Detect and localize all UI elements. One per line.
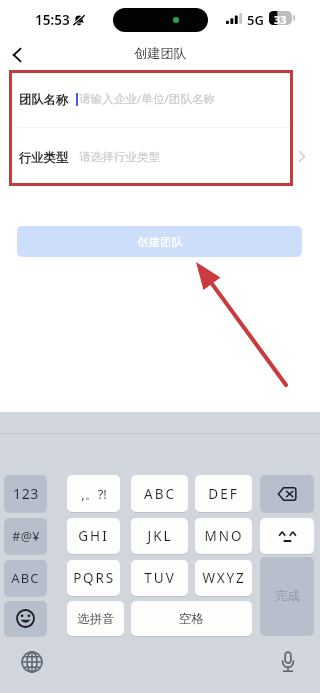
button[interactable]: DEF: [195, 475, 252, 512]
button[interactable]: Switch keyboard language: [20, 650, 44, 674]
button[interactable]: ABC: [4, 560, 47, 596]
button[interactable]: 完成: [260, 557, 314, 635]
staticText: #@¥: [12, 528, 40, 545]
staticText: ABC: [11, 569, 40, 587]
staticText: DEF: [208, 485, 239, 503]
staticText: 15:53: [35, 11, 70, 29]
staticText: ,。?!: [81, 485, 107, 503]
staticText: 完成: [275, 588, 300, 604]
button[interactable]: 选拼音: [67, 601, 124, 636]
staticText: 请输入企业/单位/团队名称: [79, 91, 216, 107]
staticText: 33: [274, 12, 287, 27]
staticText: 选拼音: [77, 611, 115, 627]
button[interactable]: WXYZ: [195, 560, 252, 596]
staticText: 行业类型: [19, 150, 69, 165]
button[interactable]: JKL: [131, 518, 188, 554]
button[interactable]: ,。?!: [67, 475, 120, 512]
staticText: 创建团队: [134, 45, 187, 62]
staticText: GHI: [78, 527, 109, 545]
button[interactable]: #@¥: [4, 518, 47, 554]
button[interactable]: Voice input: [276, 650, 300, 674]
button[interactable]: ABC: [131, 475, 188, 512]
button[interactable]: Backspace: [260, 475, 314, 512]
staticText: 请选择行业类型: [79, 150, 161, 165]
staticText: TUV: [144, 569, 176, 587]
button[interactable]: PQRS: [67, 560, 120, 596]
button[interactable]: Emoji: [4, 601, 47, 636]
staticText: 团队名称: [19, 92, 69, 107]
staticText: 123: [13, 484, 39, 503]
staticText: 创建团队: [137, 235, 183, 249]
button[interactable]: Back: [3, 41, 31, 69]
staticText: 空格: [179, 611, 204, 627]
button[interactable]: MNO: [195, 518, 252, 554]
button[interactable]: GHI: [67, 518, 120, 554]
staticText: PQRS: [73, 569, 115, 587]
staticText: MNO: [204, 527, 244, 545]
button[interactable]: 空格: [131, 601, 252, 636]
button[interactable]: TUV: [131, 560, 188, 596]
staticText: 5G: [247, 11, 264, 29]
staticText: ABC: [144, 485, 176, 503]
staticText: WXYZ: [202, 569, 246, 587]
button[interactable]: Kaomoji: [260, 518, 314, 554]
button[interactable]: 创建团队: [17, 226, 302, 257]
button[interactable]: 123: [4, 475, 47, 512]
staticText: JKL: [147, 527, 173, 545]
